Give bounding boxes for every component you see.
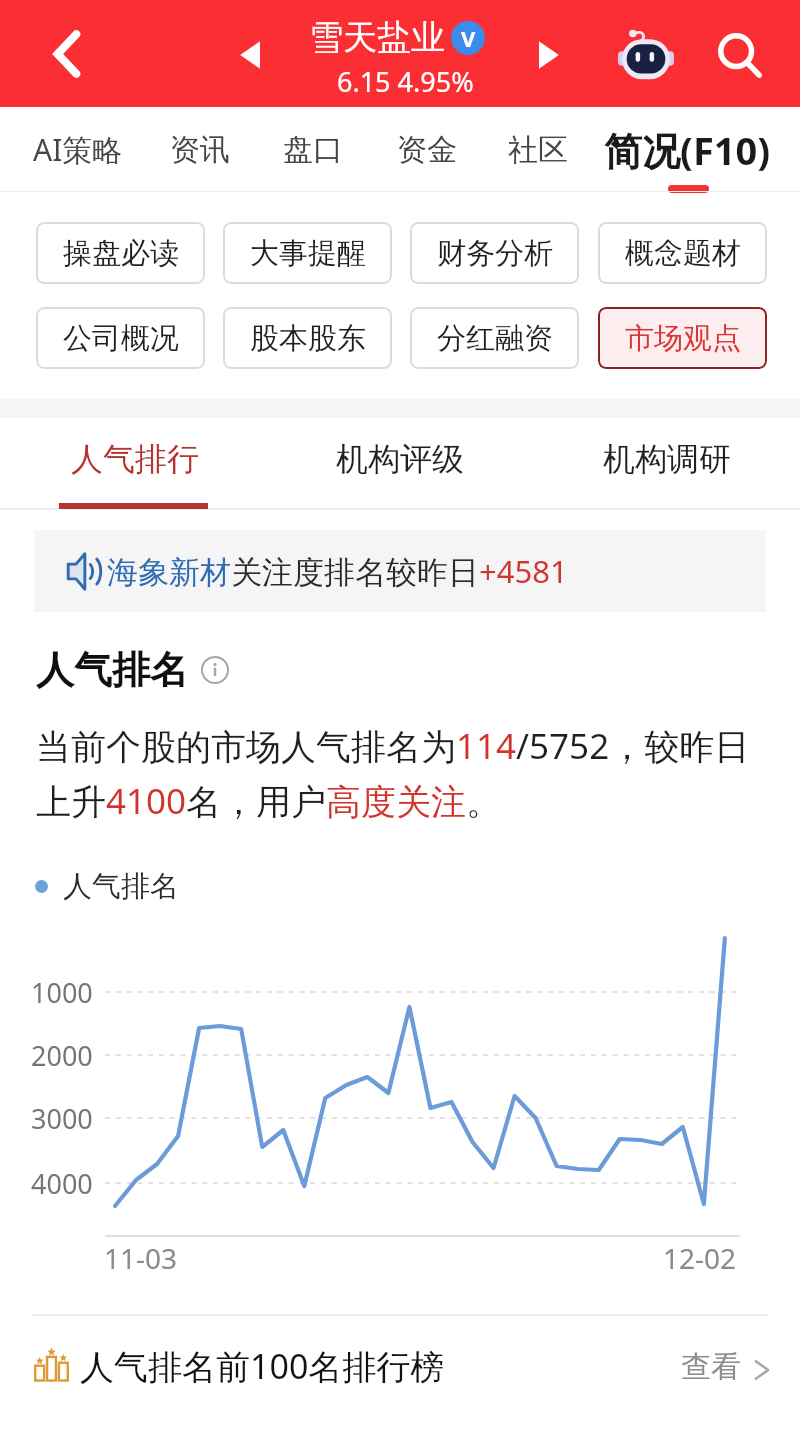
button[interactable]: 财务分析 bbox=[410, 222, 579, 284]
button[interactable]: 公司概况 bbox=[36, 307, 205, 369]
button[interactable]: 简况(F10) bbox=[592, 107, 783, 192]
button[interactable]: 盘口 bbox=[271, 107, 355, 192]
staticText: 概念题材 bbox=[625, 235, 741, 272]
staticText: 资金 bbox=[397, 131, 457, 169]
button[interactable]: Search bbox=[702, 18, 778, 94]
staticText: 财务分析 bbox=[437, 235, 553, 272]
staticText: 机构调研 bbox=[603, 439, 731, 479]
staticText: 简况(F10) bbox=[604, 124, 771, 176]
button[interactable]: 机构调研 bbox=[557, 418, 777, 500]
button[interactable]: 概念题材 bbox=[598, 222, 767, 284]
button[interactable]: 分红融资 bbox=[410, 307, 579, 369]
staticText: 11-03 bbox=[104, 1239, 178, 1277]
button[interactable]: 操盘必读 bbox=[36, 222, 205, 284]
staticText: 分红融资 bbox=[437, 320, 553, 357]
button[interactable]: 人气排行 bbox=[25, 418, 245, 500]
button[interactable]: AI策略 bbox=[21, 107, 135, 192]
staticText: 资讯 bbox=[170, 131, 230, 169]
staticText: 4000 bbox=[31, 1165, 93, 1202]
staticText: 3000 bbox=[31, 1100, 93, 1137]
button[interactable]: 查看 bbox=[675, 1340, 779, 1394]
staticText: 人气排名 bbox=[36, 646, 188, 694]
button[interactable]: Back bbox=[28, 14, 108, 94]
button[interactable]: Info bbox=[201, 656, 229, 684]
staticText: 2000 bbox=[31, 1037, 93, 1074]
button[interactable]: 股本股东 bbox=[223, 307, 392, 369]
staticText: V bbox=[461, 23, 476, 53]
staticText: 公司概况 bbox=[63, 320, 179, 357]
staticText: 社区 bbox=[508, 131, 568, 169]
button[interactable]: 海象新材关注度排名较昨日+4581 bbox=[34, 530, 766, 612]
staticText: 股本股东 bbox=[250, 320, 366, 357]
staticText: 当前个股的市场人气排名为114/5752，较昨日 上升4100名，用户高度关注。 bbox=[36, 722, 750, 824]
staticText: 6.15 4.95% bbox=[337, 63, 474, 100]
button[interactable]: 市场观点 bbox=[598, 307, 767, 369]
staticText: 人气排名前100名排行榜 bbox=[80, 1343, 445, 1389]
button[interactable]: 资讯 bbox=[158, 107, 242, 192]
staticText: 12-02 bbox=[663, 1239, 737, 1277]
staticText: 人气排名 bbox=[63, 868, 179, 905]
staticText: 海象新材关注度排名较昨日+4581 bbox=[107, 550, 568, 592]
staticText: 查看 bbox=[681, 1348, 741, 1386]
staticText: 大事提醒 bbox=[250, 235, 366, 272]
button[interactable] bbox=[0, 1316, 800, 1413]
button[interactable]: 机构评级 bbox=[290, 418, 510, 500]
button[interactable]: 社区 bbox=[496, 107, 580, 192]
staticText: 人气排行 bbox=[71, 439, 199, 479]
staticText: 机构评级 bbox=[336, 439, 464, 479]
button[interactable]: 大事提醒 bbox=[223, 222, 392, 284]
staticText: 市场观点 bbox=[625, 320, 741, 357]
button[interactable]: 资金 bbox=[385, 107, 469, 192]
button[interactable]: Next stock bbox=[513, 20, 583, 90]
staticText: 盘口 bbox=[283, 131, 343, 169]
staticText: AI策略 bbox=[33, 129, 123, 170]
button[interactable]: AI assistant bbox=[611, 19, 681, 89]
staticText: 雪天盐业 bbox=[309, 16, 445, 59]
staticText: 操盘必读 bbox=[63, 235, 179, 272]
button[interactable]: Previous stock bbox=[216, 20, 286, 90]
staticText: 1000 bbox=[31, 974, 93, 1011]
